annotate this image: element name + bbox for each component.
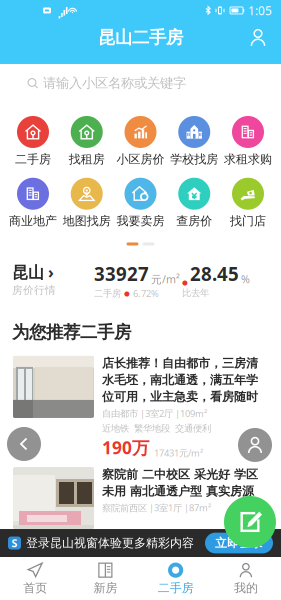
button[interactable]: 发布房源 — [224, 496, 276, 548]
button[interactable]: 请输入小区名称或关键字 — [14, 71, 267, 95]
button[interactable]: 二手房 — [140, 557, 211, 600]
staticText: 17431元/m² — [154, 447, 203, 459]
staticText: 房价行情 — [12, 284, 56, 297]
staticText: 立即登录 — [215, 536, 263, 550]
staticText: 察院前 二中校区 采光好 学区未用 南北通透户型 真实房源 — [102, 467, 258, 498]
staticText: 地图找房 — [63, 214, 111, 228]
button[interactable]: 找租房 — [62, 116, 112, 167]
staticText: 新房 — [93, 581, 117, 595]
staticText: 昆山 › — [12, 261, 54, 283]
staticText: 首页 — [23, 581, 47, 595]
staticText: 1:05 — [248, 2, 272, 18]
staticText: 学校找房 — [170, 152, 218, 167]
staticText: 找门店 — [230, 214, 266, 228]
staticText: 近地铁 — [102, 422, 129, 434]
staticText: 商业地产 — [9, 214, 57, 228]
staticText: S — [11, 536, 17, 550]
button[interactable]: 找门店 — [223, 178, 273, 228]
staticText: % — [241, 272, 250, 286]
staticText: 自由都市 |3室2厅 |109m² — [102, 407, 207, 419]
staticText: 小区房价 — [116, 152, 164, 167]
button[interactable]: 昆山 › — [0, 245, 281, 300]
staticText: 28.45 — [190, 261, 239, 286]
staticText: 查房价 — [176, 214, 212, 228]
button[interactable]: 新房 — [70, 557, 140, 600]
button[interactable]: 学校找房 — [169, 116, 219, 167]
staticText: 请输入小区名称或关键字 — [43, 75, 186, 91]
staticText: 二手房 — [15, 152, 51, 167]
staticText: 店长推荐！自由都市，三房清水毛坯，南北通透，满五年学位可用，业主急卖，看房随时 — [102, 356, 258, 404]
staticText: 找租房 — [69, 152, 105, 167]
button[interactable]: 店长推荐！自由都市，三房清水毛坯，南北通透，满五年学位可用，业主急卖，看房随时 — [0, 343, 281, 459]
staticText: 二手房 — [158, 581, 194, 595]
button[interactable]: 商业地产 — [8, 178, 58, 228]
button[interactable]: 地图找房 — [62, 178, 112, 228]
staticText: 我的 — [234, 581, 258, 595]
staticText: 登录昆山视窗体验更多精彩内容 — [26, 536, 194, 550]
staticText: 繁华地段 — [134, 422, 170, 434]
staticText: 昆山二手房 — [98, 27, 183, 48]
button[interactable]: 我要卖房 — [115, 178, 165, 228]
button[interactable]: 查房价 — [169, 178, 219, 228]
staticText: 比去年 — [182, 287, 209, 299]
staticText: 我要卖房 — [116, 214, 164, 228]
staticText: 6.72% — [133, 287, 159, 300]
staticText: 元/m² — [151, 272, 180, 286]
staticText: 190万 — [102, 436, 149, 459]
button[interactable]: 求租求购 — [223, 116, 273, 167]
staticText: 为您推荐二手房 — [12, 322, 131, 343]
button[interactable]: 小区房价 — [115, 116, 165, 167]
button[interactable]: 二手房 — [8, 116, 58, 167]
staticText: ● — [124, 290, 130, 297]
button[interactable]: 立即登录 — [205, 533, 273, 553]
button[interactable]: 察院前 二中校区 采光好 学区未用 南北通透户型 真实房源 — [0, 459, 281, 529]
button[interactable]: 返回 — [7, 427, 41, 461]
button[interactable]: 首页 — [0, 557, 70, 600]
staticText: 33927 — [94, 261, 149, 286]
button[interactable]: 我的 — [211, 557, 281, 600]
button[interactable]: 我的账户 — [248, 27, 268, 47]
staticText: 求租求购 — [224, 152, 272, 167]
staticText: 交通便利 — [175, 422, 211, 434]
staticText: ● — [182, 279, 188, 286]
staticText: 二手房 — [94, 288, 121, 299]
staticText: 察院前西区 |3室1厅 |87m² — [102, 501, 211, 514]
button[interactable]: 账户 — [238, 428, 272, 462]
